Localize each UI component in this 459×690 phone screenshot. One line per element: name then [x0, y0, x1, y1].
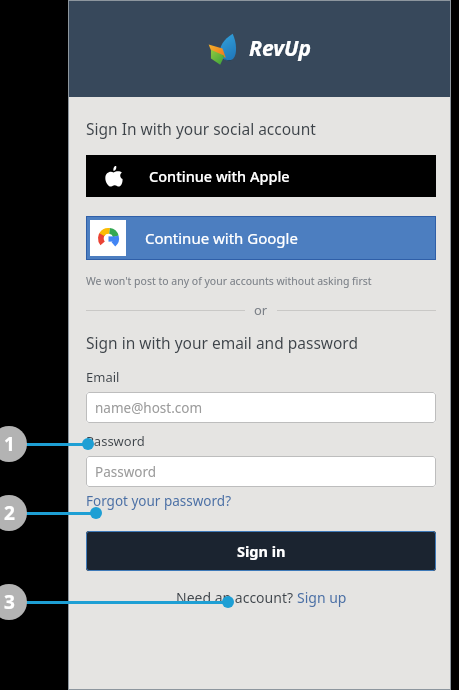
button[interactable]: Continue with Apple [86, 155, 436, 197]
staticText: We won't post to any of your accounts wi… [86, 274, 372, 288]
staticText: Continue with Google [145, 228, 298, 248]
button[interactable]: Continue with Google [86, 216, 436, 260]
staticText: Password [86, 432, 145, 450]
button[interactable]: Email [86, 392, 436, 423]
staticText: Password [95, 463, 157, 481]
button[interactable]: Forgot your password? [86, 492, 232, 510]
staticText: or [254, 301, 268, 319]
staticText: Need an account? [176, 588, 297, 607]
staticText: Sign In with your social account [86, 118, 316, 139]
staticText: 3 [4, 589, 15, 615]
staticText: Sign in [237, 541, 286, 561]
staticText: Email [86, 368, 120, 386]
staticText: name@host.com [95, 399, 203, 417]
button[interactable]: Password [86, 456, 436, 487]
staticText: Sign in with your email and password [86, 332, 358, 353]
staticText: Forgot your password? [86, 492, 232, 510]
button[interactable]: Sign up [297, 588, 347, 607]
staticText: Continue with Apple [149, 166, 290, 186]
staticText: Sign up [297, 588, 347, 607]
button[interactable]: Sign in [86, 531, 436, 571]
staticText: RevUp [249, 34, 312, 63]
staticText: 2 [4, 500, 15, 526]
staticText: 1 [4, 431, 15, 457]
